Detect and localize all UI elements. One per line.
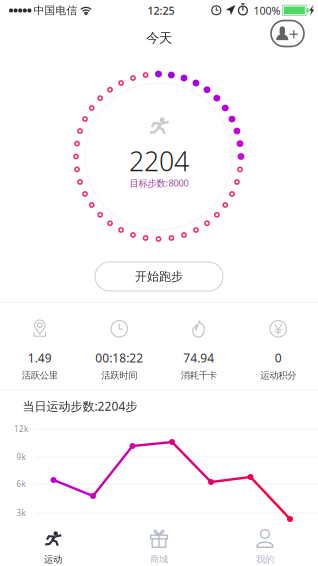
staticText: 6k xyxy=(16,479,25,489)
button[interactable]: 我的 xyxy=(212,527,318,566)
staticText: 我的 xyxy=(256,554,274,565)
staticText: 商城 xyxy=(150,554,168,565)
staticText: 1.49 xyxy=(28,350,52,366)
staticText: 9k xyxy=(16,452,25,462)
staticText: 开始跑步 xyxy=(135,269,183,284)
button[interactable]: 添加好友 xyxy=(271,20,304,46)
staticText: 12:25 xyxy=(147,3,174,18)
staticText: 12k xyxy=(14,424,28,434)
staticText: 100% xyxy=(253,3,280,18)
button[interactable]: 商城 xyxy=(106,527,212,566)
button[interactable]: 运动 xyxy=(0,527,106,566)
staticText: 3k xyxy=(16,508,25,518)
staticText: 2204 xyxy=(129,143,189,179)
staticText: 运动积分 xyxy=(260,370,296,381)
staticText: 活跃时间 xyxy=(101,370,137,381)
staticText: 目标步数:8000 xyxy=(129,177,188,189)
staticText: 活跃公里 xyxy=(22,370,58,381)
staticText: 消耗千卡 xyxy=(181,370,217,381)
staticText: 0 xyxy=(275,350,282,366)
staticText: 中国电信 xyxy=(33,4,77,17)
staticText: 74.94 xyxy=(183,350,214,366)
staticText: 当日运动步数:2204步 xyxy=(22,398,137,414)
staticText: 00:18:22 xyxy=(95,350,143,366)
button[interactable]: 开始跑步 xyxy=(95,262,223,291)
staticText: 今天 xyxy=(146,30,172,46)
staticText: 运动 xyxy=(44,554,62,565)
